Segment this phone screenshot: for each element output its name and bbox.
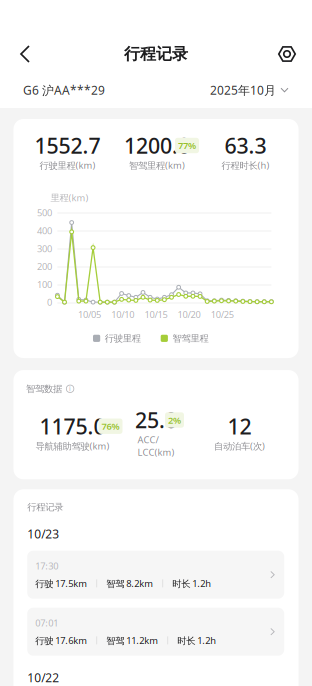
staticText: 智驾里程(km) — [129, 159, 185, 171]
staticText: i — [69, 384, 71, 393]
staticText: 10/25 — [211, 308, 234, 321]
staticText: 时长 1.2h — [172, 577, 211, 590]
staticText: 时长 1.2h — [177, 634, 216, 647]
button[interactable]: 17:30 — [27, 551, 284, 599]
staticText: 500 — [37, 206, 52, 219]
staticText: 77% — [178, 139, 196, 152]
staticText: 1175.0 — [39, 412, 105, 440]
staticText: 10/22 — [27, 670, 59, 686]
staticText: 25.0 — [135, 406, 177, 434]
staticText: 行程记录 — [124, 44, 188, 64]
staticText: 300 — [37, 242, 52, 255]
staticText: 智驾里程 — [172, 333, 208, 344]
staticText: 行驶里程(km) — [39, 159, 95, 171]
staticText: G6 沪AA***29 — [23, 82, 105, 98]
staticText: 1200.0 — [124, 131, 190, 160]
staticText: 10/23 — [27, 526, 59, 542]
button[interactable]: Settings — [262, 27, 312, 81]
staticText: 100 — [37, 278, 52, 290]
staticText: 行驶 17.6km — [35, 634, 87, 647]
staticText: 行驶 17.5km — [35, 577, 87, 590]
staticText: 里程(km) — [50, 191, 88, 204]
staticText: 17:30 — [35, 560, 58, 572]
staticText: 400 — [37, 224, 52, 237]
staticText: 07:01 — [35, 617, 58, 629]
staticText: 200 — [37, 260, 52, 273]
staticText: 2% — [168, 414, 181, 426]
staticText: 1552.7 — [34, 131, 100, 160]
staticText: 76% — [101, 420, 119, 432]
staticText: 10/15 — [144, 308, 167, 321]
staticText: 行驶里程 — [105, 333, 141, 344]
button[interactable]: Back — [0, 27, 50, 81]
staticText: 智驾 8.2km — [106, 577, 153, 590]
staticText: 10/20 — [178, 308, 201, 321]
button[interactable]: 2025年10月 — [210, 82, 288, 98]
staticText: 10/10 — [111, 308, 134, 321]
staticText: 63.3 — [224, 131, 266, 160]
staticText: 10/05 — [78, 308, 101, 321]
staticText: 智驾数据 — [26, 383, 62, 394]
staticText: ACC/LCC(km) — [137, 433, 174, 458]
button[interactable]: 07:01 — [27, 608, 284, 656]
staticText: 2025年10月 — [210, 82, 276, 98]
staticText: 行程时长(h) — [221, 159, 269, 171]
staticText: 智驾 11.2km — [106, 634, 158, 647]
staticText: 0 — [47, 296, 52, 308]
staticText: 自动泊车(次) — [214, 440, 265, 452]
staticText: 12 — [227, 412, 251, 440]
staticText: 行程记录 — [27, 501, 63, 513]
staticText: 导航辅助驾驶(km) — [35, 440, 109, 452]
